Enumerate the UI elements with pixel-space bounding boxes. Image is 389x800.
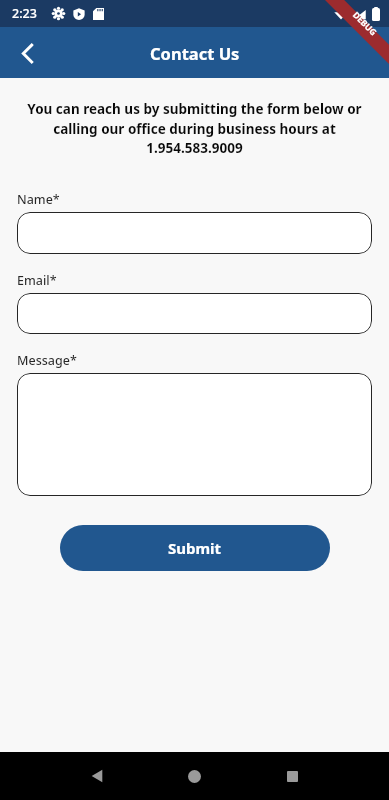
button[interactable]: Home [145,752,243,800]
button[interactable] [17,293,372,334]
staticText: Name* [17,191,60,208]
button[interactable]: Back [4,30,50,76]
staticText: DEBUG [350,9,380,39]
staticText: Message* [17,352,77,369]
button[interactable]: Back [48,752,145,800]
staticText: You can reach us by submitting the form … [21,100,368,157]
button[interactable]: Submit [60,525,330,571]
button[interactable] [17,212,372,254]
button[interactable]: Recent apps [243,752,341,800]
staticText: Contact Us [150,42,240,64]
staticText: Email* [17,272,57,289]
button[interactable] [17,373,372,496]
staticText: 2:23 [12,5,37,22]
staticText: Submit [168,538,222,558]
